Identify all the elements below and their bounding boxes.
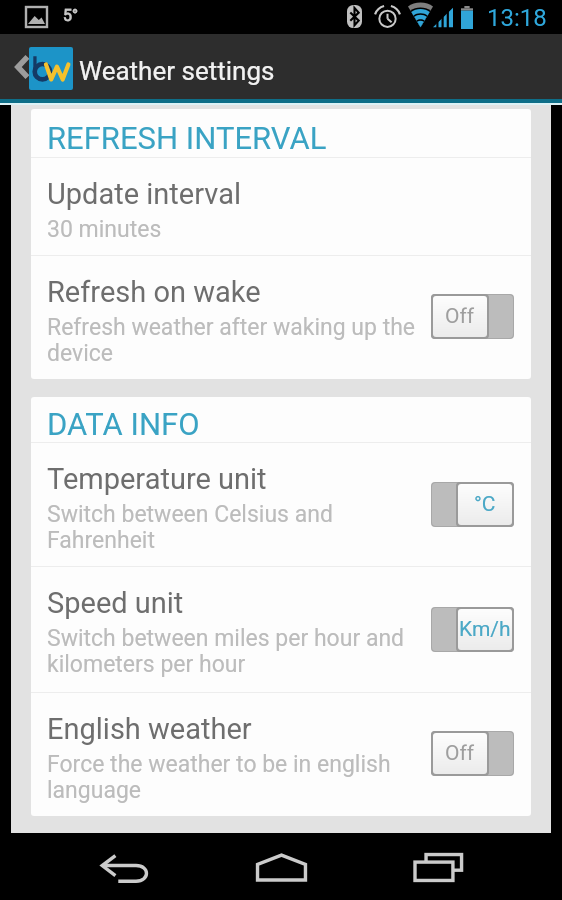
staticText: 5° — [63, 6, 78, 25]
staticText: 30 minutes — [47, 216, 162, 243]
button[interactable]: Back — [62, 833, 186, 900]
button[interactable]: Temperature unit — [31, 443, 531, 566]
staticText: Switch between Celsius and Fahrenheit — [47, 501, 423, 553]
staticText: Off — [445, 304, 475, 329]
staticText: 13:18 — [487, 4, 547, 32]
staticText: Update interval — [47, 177, 241, 211]
staticText: Refresh weather after waking up the devi… — [47, 314, 423, 366]
staticText: DATA INFO — [47, 406, 200, 442]
staticText: Refresh on wake — [47, 275, 261, 309]
staticText: Force the weather to be in english langu… — [47, 751, 423, 803]
button[interactable]: Off — [431, 294, 514, 339]
staticText: Km/h — [459, 617, 511, 642]
staticText: Temperature unit — [47, 462, 267, 496]
staticText: Off — [445, 741, 475, 766]
button[interactable]: English weather — [31, 693, 531, 816]
button[interactable]: Recent apps — [376, 833, 500, 900]
staticText: REFRESH INTERVAL — [47, 120, 327, 156]
button[interactable]: Km/h — [431, 607, 514, 652]
staticText: °C — [474, 492, 496, 517]
button[interactable]: °C — [431, 482, 514, 527]
staticText: English weather — [47, 712, 252, 746]
button[interactable]: Navigate up — [8, 34, 78, 99]
button[interactable]: Off — [431, 731, 514, 776]
button[interactable]: Update interval — [31, 158, 531, 255]
button[interactable]: Home — [219, 833, 343, 900]
staticText: Speed unit — [47, 586, 184, 620]
staticText: Weather settings — [79, 56, 275, 86]
staticText: Switch between miles per hour and kilome… — [47, 625, 423, 677]
button[interactable]: Speed unit — [31, 567, 531, 692]
button[interactable]: Refresh on wake — [31, 256, 531, 379]
